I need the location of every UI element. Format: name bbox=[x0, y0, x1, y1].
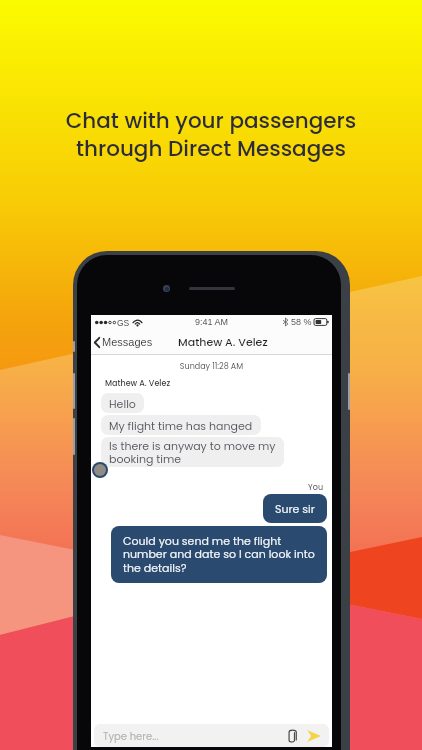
button[interactable]: Sure sir bbox=[263, 494, 327, 523]
staticText: Could you send me the flight number and … bbox=[123, 533, 315, 576]
button[interactable]: Hello bbox=[101, 393, 144, 413]
staticText: Mathew A. Velez bbox=[105, 378, 171, 389]
button[interactable]: My flight time has hanged bbox=[101, 415, 261, 435]
staticText: Mathew A. Velez bbox=[178, 334, 268, 349]
staticText: Messages bbox=[102, 336, 153, 348]
staticText: Is there is anyway to move my booking ti… bbox=[109, 438, 276, 466]
staticText: Type here... bbox=[103, 729, 159, 743]
button[interactable]: Type here... bbox=[94, 724, 329, 747]
staticText: Sunday 11:28 AM bbox=[91, 361, 332, 372]
staticText: 58 % bbox=[291, 317, 312, 327]
button[interactable]: Could you send me the flight number and … bbox=[111, 526, 327, 583]
staticText: My flight time has hanged bbox=[109, 418, 253, 433]
staticText: Sure sir bbox=[275, 501, 315, 516]
button[interactable]: Back to Messages bbox=[94, 336, 153, 348]
button[interactable]: Send bbox=[305, 727, 323, 745]
staticText: Hello bbox=[109, 396, 136, 411]
button[interactable]: Is there is anyway to move my booking ti… bbox=[101, 437, 284, 467]
button[interactable]: Attach file bbox=[284, 728, 300, 744]
staticText: 9:41 AM bbox=[195, 317, 229, 327]
staticText: You bbox=[91, 482, 323, 493]
staticText: GS bbox=[117, 318, 130, 327]
staticText: Chat with your passengers through Direct… bbox=[0, 105, 422, 164]
